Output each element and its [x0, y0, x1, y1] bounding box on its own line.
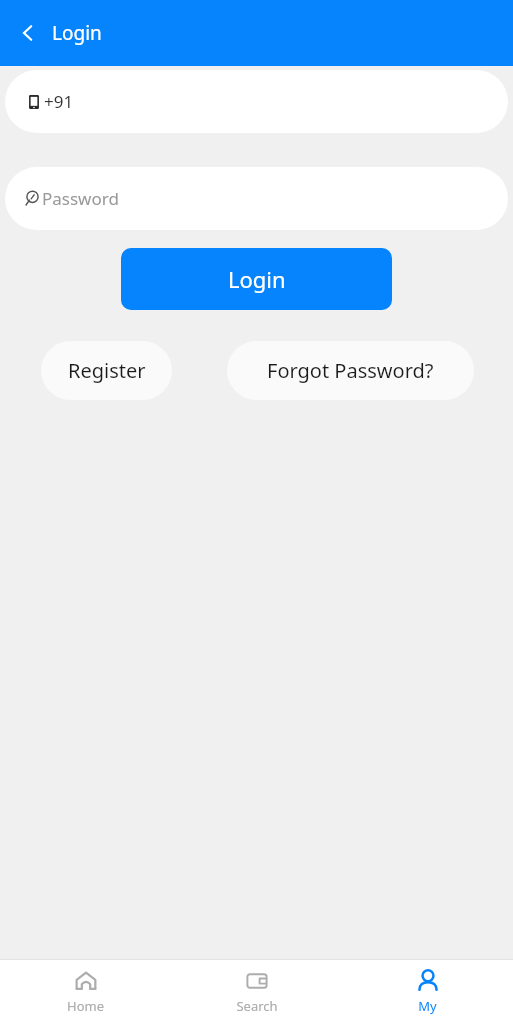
staticText: Search — [236, 997, 278, 1015]
staticText: Forgot Password? — [267, 357, 434, 384]
button[interactable]: Home — [0, 960, 171, 1015]
staticText: Login — [228, 264, 286, 294]
staticText: My — [418, 997, 437, 1015]
button[interactable]: My — [342, 960, 513, 1015]
button[interactable]: Search — [171, 960, 342, 1015]
staticText: Password — [42, 187, 119, 210]
staticText: Home — [67, 997, 104, 1015]
staticText: Login — [52, 20, 102, 46]
button[interactable]: Password — [5, 167, 508, 230]
staticText: +91 — [44, 90, 74, 113]
button[interactable]: Register — [41, 341, 172, 400]
button[interactable]: Login — [121, 248, 392, 310]
button[interactable]: +91 — [5, 70, 508, 133]
staticText: Register — [68, 357, 146, 384]
button[interactable]: Back — [8, 13, 48, 53]
button[interactable]: Forgot Password? — [227, 341, 474, 400]
